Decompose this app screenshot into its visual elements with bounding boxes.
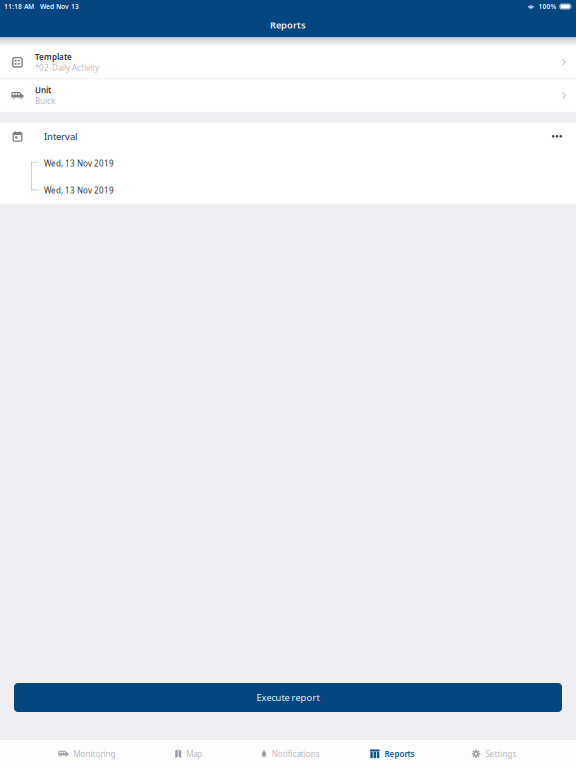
button[interactable]: More interval options [546,123,576,150]
staticText: 11:18 AM [4,2,34,11]
staticText: Wed, 13 Nov 2019 [44,158,114,169]
button[interactable]: Monitoring [36,740,138,768]
staticText: Interval [44,130,77,142]
staticText: Unit [35,85,51,95]
button[interactable]: Wed, 13 Nov 2019 [44,150,576,177]
staticText: *02-Daily Activity [35,62,99,73]
staticText: Template [35,52,72,62]
button[interactable]: Settings [443,740,545,768]
staticText: Notifications [272,748,320,759]
staticText: Wed, 13 Nov 2019 [44,185,114,196]
button[interactable]: Wed, 13 Nov 2019 [44,177,576,204]
staticText: Wed Nov 13 [40,2,79,11]
staticText: Buick [35,95,55,106]
staticText: Map [186,748,202,759]
button[interactable]: Notifications [240,740,341,768]
button[interactable]: Execute report [14,683,562,712]
staticText: Reports [270,19,306,31]
button[interactable]: Template [0,46,576,78]
staticText: Execute report [256,691,319,704]
button[interactable]: Unit [0,79,576,112]
button[interactable]: Map [138,740,240,768]
staticText: Monitoring [73,748,115,759]
staticText: Reports [385,748,415,759]
staticText: 100% [538,2,556,11]
staticText: Settings [485,748,516,759]
button[interactable]: Reports [341,740,443,768]
